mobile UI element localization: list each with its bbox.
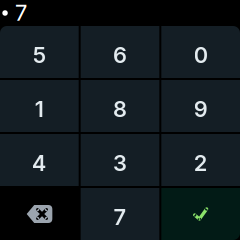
staticText: 3 xyxy=(113,150,127,176)
staticText: 2 xyxy=(194,150,208,176)
staticText: 1 xyxy=(35,96,44,122)
staticText: 7 xyxy=(113,204,126,230)
button[interactable]: 2 xyxy=(161,134,240,186)
button[interactable]: Confirm xyxy=(161,188,240,240)
button[interactable]: 9 xyxy=(161,80,240,132)
button[interactable]: 6 xyxy=(81,26,159,78)
button[interactable]: 5 xyxy=(0,26,79,78)
button[interactable]: 1 xyxy=(0,80,79,132)
button[interactable]: 0 xyxy=(161,26,240,78)
staticText: 7 xyxy=(15,0,27,26)
staticText: 5 xyxy=(33,42,46,68)
button[interactable]: 7 xyxy=(81,188,159,240)
staticText: 9 xyxy=(194,96,208,122)
staticText: 4 xyxy=(32,150,47,176)
staticText: 0 xyxy=(194,42,208,68)
staticText: 6 xyxy=(113,42,127,68)
button[interactable]: 3 xyxy=(81,134,159,186)
staticText: 8 xyxy=(113,96,127,122)
button[interactable]: 4 xyxy=(0,134,79,186)
button[interactable]: Delete xyxy=(0,188,79,240)
button[interactable]: 8 xyxy=(81,80,159,132)
